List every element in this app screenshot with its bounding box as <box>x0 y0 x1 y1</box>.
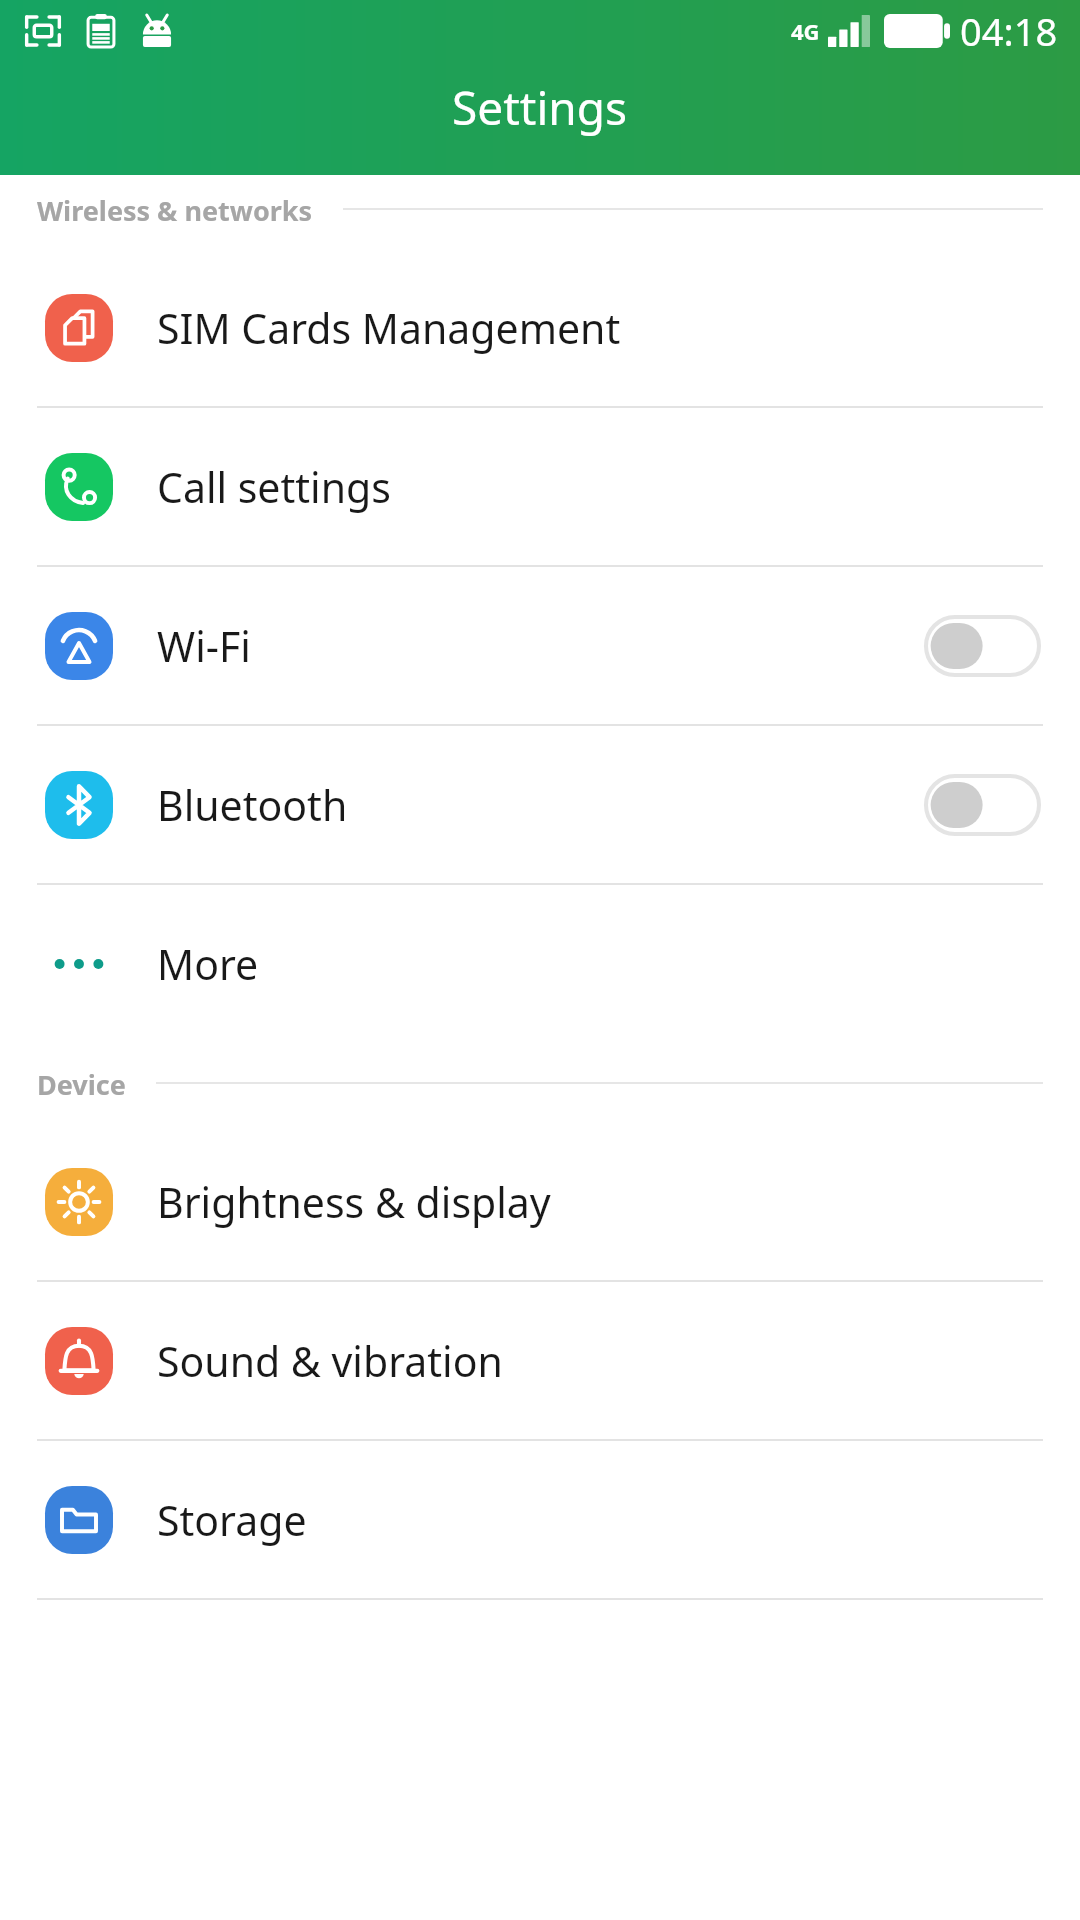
button[interactable]: Storage <box>0 1441 1080 1598</box>
staticText: Sound & vibration <box>157 1333 1080 1389</box>
staticText: Wi-Fi <box>157 618 926 674</box>
staticText: Bluetooth <box>157 777 926 833</box>
staticText: Call settings <box>157 459 1080 515</box>
button[interactable]: More <box>0 885 1080 1042</box>
button[interactable]: Brightness & display <box>0 1123 1080 1280</box>
staticText: Wireless & networks <box>37 192 313 226</box>
staticText: Settings <box>452 76 628 139</box>
staticText: SIM Cards Management <box>157 300 1080 356</box>
staticText: Brightness & display <box>157 1174 1080 1230</box>
button[interactable]: Bluetooth <box>0 726 1080 883</box>
staticText: 4G <box>791 16 820 46</box>
staticText: More <box>157 936 1080 992</box>
button[interactable]: Wi-Fi <box>0 567 1080 724</box>
button[interactable]: Sound & vibration <box>0 1282 1080 1439</box>
staticText: Device <box>37 1066 126 1100</box>
button[interactable]: Wi-Fi switch, off <box>926 617 1039 675</box>
button[interactable]: SIM Cards Management <box>0 249 1080 406</box>
button[interactable]: Call settings <box>0 408 1080 565</box>
staticText: Storage <box>157 1492 1080 1548</box>
button[interactable]: Bluetooth switch, off <box>926 776 1039 834</box>
staticText: 04:18 <box>960 5 1058 57</box>
